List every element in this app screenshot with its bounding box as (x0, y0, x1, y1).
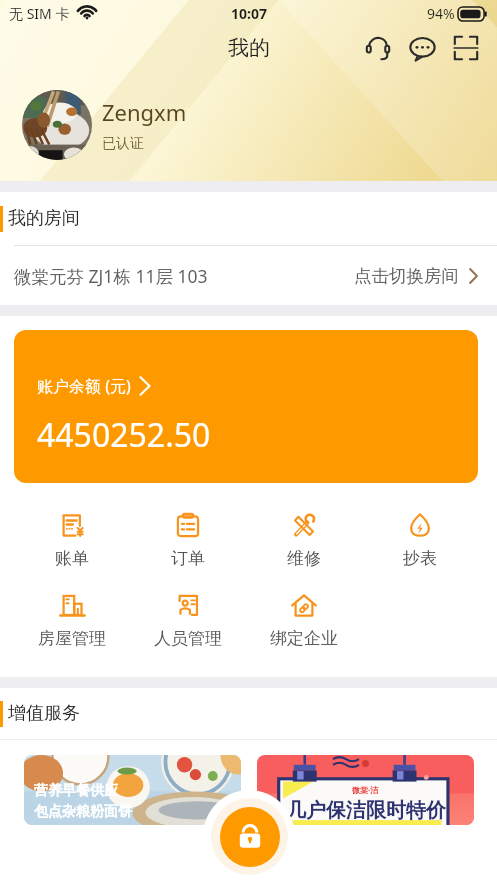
staticText: 我的房间 (8, 207, 80, 230)
button[interactable]: 账户余额 (元) (14, 330, 478, 483)
staticText: 点击切换房间 (354, 265, 459, 287)
staticText: 订单 (171, 548, 205, 569)
staticText: 几户保洁限时特价 (286, 798, 446, 823)
button[interactable]: 人员管理 (130, 592, 246, 649)
button[interactable]: 微棠元芬 ZJ1栋 11层 103 (0, 246, 497, 305)
staticText: 10:07 (231, 4, 267, 23)
staticText: Zengxm (102, 97, 187, 127)
button[interactable]: Customer service (359, 29, 397, 67)
staticText: 维修 (287, 548, 321, 569)
staticText: 绑定企业 (270, 628, 338, 649)
button[interactable]: 维修 (246, 512, 362, 569)
staticText: 抄表 (403, 548, 437, 569)
staticText: 增值服务 (8, 702, 80, 725)
staticText: 账户余额 (元) (37, 375, 131, 397)
button[interactable]: Zengxm (22, 90, 497, 160)
button[interactable]: 订单 (130, 512, 246, 569)
staticText: 营养早餐供应 (34, 782, 118, 800)
staticText: 我的 (228, 35, 270, 61)
button[interactable]: 绑定企业 (246, 592, 362, 649)
staticText: 4450252.50 (37, 413, 211, 457)
button[interactable]: 抄表 (362, 512, 478, 569)
staticText: 微棠·洁 (352, 784, 379, 795)
staticText: 无 SIM 卡 (9, 4, 70, 23)
button[interactable]: Messages (403, 29, 441, 67)
staticText: 微棠元芬 ZJ1栋 11层 103 (14, 264, 208, 288)
staticText: 包点杂粮粉面饼 (34, 803, 132, 821)
button[interactable]: Lock (220, 807, 280, 867)
button[interactable]: 营养早餐供应 (24, 755, 241, 825)
staticText: 人员管理 (154, 628, 222, 649)
button[interactable]: 账单 (13, 512, 130, 569)
staticText: 94% (427, 4, 455, 23)
staticText: 已认证 (102, 135, 144, 153)
button[interactable]: Scan (447, 29, 485, 67)
button[interactable]: 房屋管理 (13, 592, 130, 649)
staticText: 账单 (55, 548, 89, 569)
button[interactable]: 微棠·洁 (257, 755, 474, 825)
staticText: 房屋管理 (38, 628, 106, 649)
